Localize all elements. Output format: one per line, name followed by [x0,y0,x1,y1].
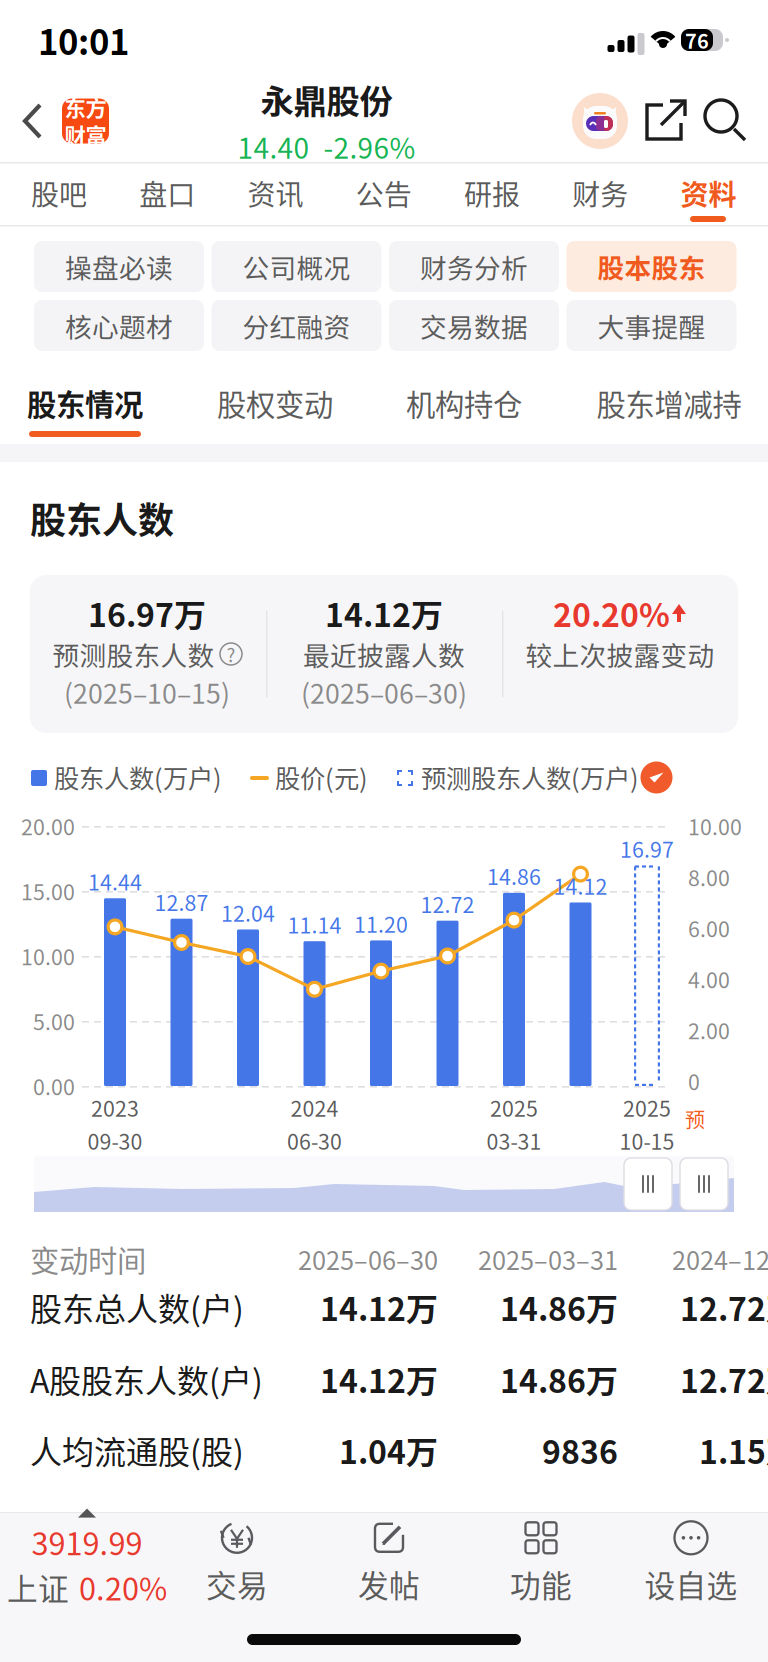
staticText: 9836 [542,1427,618,1473]
staticText: 14.12 [553,870,607,901]
staticText: 股本股东 [597,247,705,286]
staticText: 变动时间 [30,1238,146,1280]
staticText: 盘口 [139,173,195,213]
button[interactable]: 核心题材 [34,300,204,351]
staticText: 10:01 [38,15,129,65]
staticText: 财务 [572,173,628,213]
staticText: 12.87 [154,886,208,917]
staticText: 2.00 [688,1015,730,1045]
staticText: 股价(元) [275,759,368,795]
staticText: 2025–06–30 [298,1241,438,1277]
staticText: (2025–06–30) [301,673,467,711]
button[interactable]: East Money [62,98,109,143]
staticText: 14.12万 [325,590,443,636]
staticText: A股股东人数(户) [30,1356,263,1402]
button[interactable]: Search [704,99,768,143]
staticText: 14.86万 [500,1356,618,1402]
staticText: 上证 [7,1565,69,1609]
button[interactable]: 股吧 [4,163,113,223]
staticText: 资讯 [247,173,303,213]
staticText: 功能 [510,1562,572,1606]
button[interactable]: Back [0,100,62,142]
staticText: 11.20 [354,908,408,939]
button[interactable]: 设自选 [611,1522,768,1602]
staticText: 发帖 [358,1562,420,1606]
button[interactable]: 3919.99 [0,1512,182,1604]
staticText: 20.20% [553,590,670,636]
staticText: 4.00 [688,964,730,994]
button[interactable]: 功能 [461,1522,621,1602]
button[interactable]: 股权变动 [175,375,375,431]
button[interactable]: 交易数据 [389,300,559,351]
staticText: 大事提醒 [597,306,705,345]
button[interactable]: 股东情况 [0,375,185,431]
button[interactable]: AI Assistant [572,93,628,149]
staticText: 09-30 [87,1125,142,1156]
staticText: 股权变动 [217,382,333,424]
staticText: 0 [688,1066,700,1096]
button[interactable]: 财务分析 [389,241,559,292]
button[interactable]: 操盘必读 [34,241,204,292]
button[interactable]: 盘口 [113,163,222,223]
staticText: 财务分析 [420,247,528,286]
staticText: 股东情况 [27,382,143,424]
button[interactable]: Range end [680,1158,728,1210]
staticText: 11.14 [287,909,341,940]
staticText: 财富 [64,119,106,150]
staticText: 14.12万 [320,1356,438,1402]
staticText: 股价(元) [30,1514,148,1560]
staticText: (2025–10–15) [64,673,230,711]
staticText: 10-15 [619,1125,674,1156]
button[interactable]: 股本股东 [566,241,736,292]
staticText: 14.12万 [320,1284,438,1330]
staticText: 人均流通股(股) [30,1427,244,1473]
staticText: 2025–03–31 [478,1241,618,1277]
staticText: 0.00 [33,1071,75,1101]
staticText: 预测股东人数(万户) [421,759,639,795]
button[interactable]: 机构持仓 [364,375,564,431]
staticText: 1.15万 [699,1427,768,1473]
staticText: 12.72万 [680,1284,768,1330]
staticText: 2024–12–3 [672,1241,768,1277]
button[interactable]: 大事提醒 [566,300,736,351]
button[interactable]: 股东增减持 [569,375,768,431]
staticText: 0.20% [79,1565,167,1609]
button[interactable]: Toggle forecast series [641,762,672,793]
staticText: 03-31 [486,1125,541,1156]
staticText: 交易 [206,1562,268,1606]
staticText: 资料 [680,173,736,213]
button[interactable]: 公司概况 [211,241,381,292]
staticText: 14.86 [487,860,541,891]
button[interactable]: 财务 [546,163,655,223]
staticText: 3919.99 [31,1520,142,1564]
staticText: 机构持仓 [406,382,522,424]
staticText: 股吧 [31,173,87,213]
button[interactable]: 研报 [437,163,546,223]
staticText: 10.00 [21,941,75,971]
staticText: 06-30 [287,1125,342,1156]
button[interactable]: 公告 [329,163,438,223]
staticText: 分红融资 [242,306,350,345]
staticText: -2.96% [323,126,415,167]
staticText: 8.00 [688,862,730,892]
staticText: 公司概况 [242,247,350,286]
staticText: 设自选 [644,1562,737,1606]
button[interactable]: Range start [624,1158,672,1210]
staticText: 股东人数 [30,492,174,544]
staticText: 2025 [490,1092,538,1123]
staticText: 操盘必读 [65,247,173,286]
staticText: 20.00 [21,811,75,841]
staticText: 东方 [64,92,106,122]
staticText: 2025 [623,1092,671,1123]
staticText: ? [226,640,235,667]
button[interactable]: 交易 [157,1522,317,1602]
button[interactable]: 资料 [654,163,763,223]
staticText: 76 [685,25,709,54]
button[interactable]: 发帖 [309,1522,469,1602]
button[interactable]: Share [628,99,704,143]
staticText: 预测股东人数 [52,635,214,673]
staticText: 15.00 [21,876,75,906]
staticText: 较上次披露变动 [525,635,714,673]
button[interactable]: 资讯 [221,163,330,223]
button[interactable]: 分红融资 [211,300,381,351]
